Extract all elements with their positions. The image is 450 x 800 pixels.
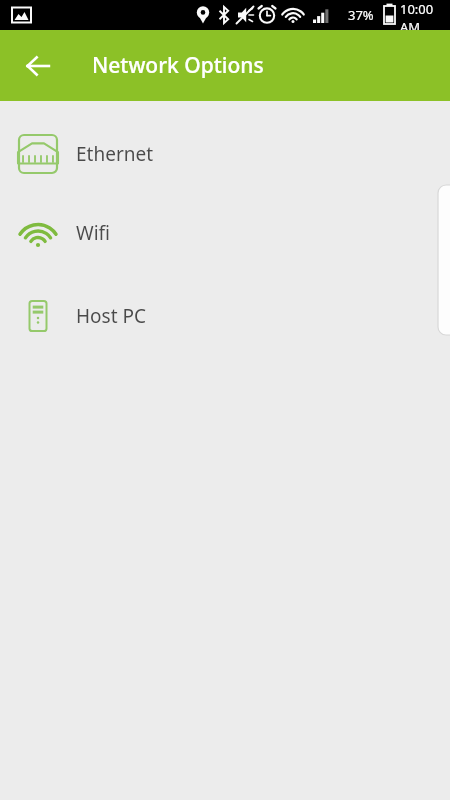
staticText: 10:00 AM: [400, 0, 450, 30]
staticText: 37%: [348, 6, 374, 24]
staticText: Ethernet: [76, 141, 154, 167]
button[interactable]: Host PC: [0, 272, 450, 359]
button[interactable]: Back: [14, 42, 62, 90]
staticText: Network Options: [92, 51, 264, 80]
staticText: Host PC: [76, 303, 146, 329]
button[interactable]: Wifi: [0, 193, 450, 272]
staticText: Wifi: [76, 220, 111, 246]
button[interactable]: Ethernet: [0, 114, 450, 193]
